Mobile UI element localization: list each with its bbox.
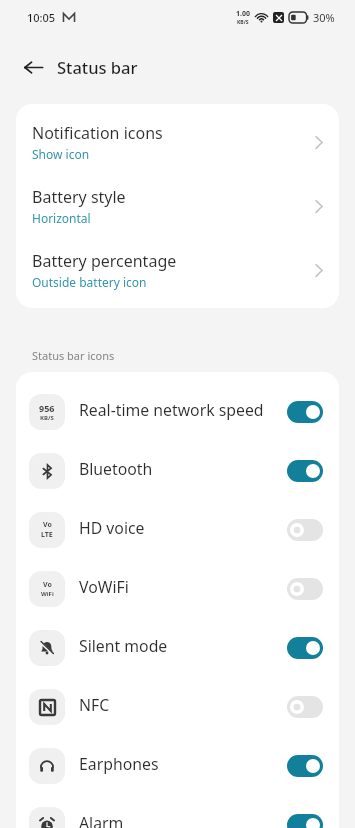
button[interactable]: Notification icons: [16, 110, 339, 174]
staticText: 1.00: [236, 9, 250, 19]
staticText: 30%: [313, 10, 335, 25]
button[interactable]: Bluetooth: [16, 441, 339, 500]
staticText: Vo: [43, 580, 52, 590]
staticText: Notification icons: [32, 122, 163, 144]
button[interactable]: On: [287, 401, 323, 423]
button[interactable]: Silent mode: [16, 618, 339, 677]
staticText: Battery percentage: [32, 250, 177, 272]
button[interactable]: Battery style: [16, 174, 339, 238]
button[interactable]: Vo: [16, 500, 339, 559]
staticText: Earphones: [79, 753, 287, 775]
button[interactable]: NFC: [16, 677, 339, 736]
button[interactable]: Back: [18, 52, 48, 82]
button[interactable]: Earphones: [16, 736, 339, 795]
staticText: Real-time network speed: [79, 399, 287, 421]
staticText: Vo: [43, 520, 52, 530]
staticText: Status bar icons: [32, 348, 115, 363]
staticText: Alarm: [79, 812, 287, 828]
button[interactable]: 956: [16, 382, 339, 441]
staticText: LTE: [41, 530, 53, 540]
button[interactable]: On: [287, 637, 323, 659]
staticText: 10:05: [27, 10, 56, 25]
button[interactable]: On: [287, 460, 323, 482]
staticText: KB/S: [40, 414, 54, 422]
button[interactable]: Alarm: [16, 795, 339, 828]
staticText: 956: [39, 402, 55, 414]
staticText: VoWiFi: [79, 576, 287, 598]
staticText: WiFi: [41, 590, 54, 598]
staticText: HD voice: [79, 517, 287, 539]
staticText: KB/S: [237, 19, 249, 26]
button[interactable]: Vo: [16, 559, 339, 618]
staticText: Silent mode: [79, 635, 287, 657]
staticText: Show icon: [32, 146, 90, 162]
staticText: Battery style: [32, 186, 126, 208]
staticText: Outside battery icon: [32, 274, 147, 290]
staticText: Bluetooth: [79, 458, 287, 480]
button[interactable]: Off: [287, 578, 323, 600]
button[interactable]: Off: [287, 519, 323, 541]
staticText: NFC: [79, 694, 287, 716]
button[interactable]: Off: [287, 696, 323, 718]
button[interactable]: Battery percentage: [16, 238, 339, 302]
staticText: Horizontal: [32, 210, 91, 226]
staticText: Status bar: [57, 56, 138, 78]
button[interactable]: On: [287, 814, 323, 828]
button[interactable]: On: [287, 755, 323, 777]
